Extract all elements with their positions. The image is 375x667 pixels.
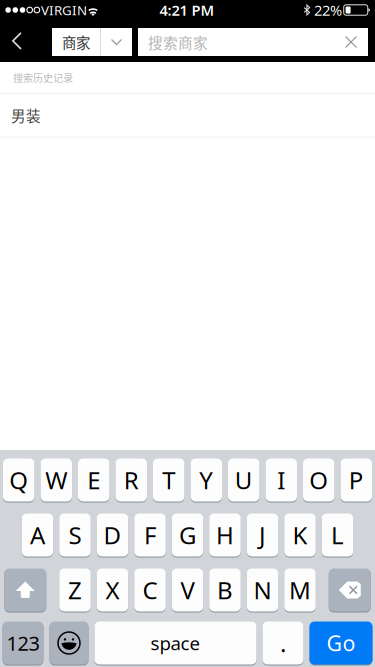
staticText: M bbox=[289, 574, 311, 606]
button[interactable]: 搜索商家 bbox=[138, 28, 368, 56]
button[interactable]: A bbox=[22, 513, 53, 557]
button[interactable]: T bbox=[153, 458, 184, 502]
button[interactable]: D bbox=[97, 513, 128, 557]
button[interactable]: B bbox=[209, 568, 241, 612]
button[interactable]: G bbox=[172, 513, 203, 557]
staticText: D bbox=[103, 519, 121, 551]
button[interactable]: U bbox=[228, 458, 259, 502]
staticText: C bbox=[142, 574, 157, 606]
staticText: VIRGIN bbox=[41, 1, 87, 19]
button[interactable]: space bbox=[94, 621, 256, 665]
button[interactable]: F bbox=[134, 513, 166, 557]
staticText: L bbox=[331, 519, 344, 551]
staticText: 22% bbox=[314, 0, 342, 20]
staticText: N bbox=[253, 574, 271, 606]
button[interactable]: L bbox=[322, 513, 353, 557]
button[interactable]: X bbox=[97, 568, 128, 612]
staticText: 男装 bbox=[11, 105, 41, 126]
staticText: 商家 bbox=[62, 32, 90, 52]
staticText: I bbox=[277, 464, 285, 496]
staticText: 搜索商家 bbox=[148, 31, 208, 53]
staticText: G bbox=[179, 519, 196, 551]
button[interactable]: 商家 bbox=[52, 28, 132, 56]
staticText: K bbox=[292, 519, 307, 551]
staticText: O bbox=[309, 464, 328, 496]
staticText: P bbox=[349, 464, 364, 496]
button[interactable]: W bbox=[40, 458, 72, 502]
staticText: Go bbox=[326, 629, 355, 657]
button[interactable]: N bbox=[247, 568, 278, 612]
button[interactable]: O bbox=[303, 458, 334, 502]
button[interactable]: Y bbox=[190, 458, 222, 502]
staticText: 123 bbox=[6, 630, 39, 656]
staticText: 4:21 PM bbox=[159, 0, 214, 20]
button[interactable]: I bbox=[265, 458, 297, 502]
button[interactable]: C bbox=[134, 568, 166, 612]
staticText: S bbox=[68, 519, 81, 551]
button[interactable]: P bbox=[340, 458, 372, 502]
staticText: U bbox=[235, 464, 253, 496]
button[interactable]: Back bbox=[0, 20, 34, 62]
button[interactable]: Shift bbox=[4, 568, 46, 612]
button[interactable]: R bbox=[115, 458, 147, 502]
staticText: T bbox=[162, 464, 175, 496]
staticText: 搜索历史记录 bbox=[13, 70, 73, 85]
staticText: Z bbox=[68, 574, 82, 606]
button[interactable]: J bbox=[247, 513, 278, 557]
staticText: . bbox=[280, 627, 286, 659]
staticText: W bbox=[45, 464, 67, 496]
button[interactable]: Delete bbox=[329, 568, 371, 612]
staticText: X bbox=[105, 574, 119, 606]
button[interactable]: . bbox=[262, 621, 303, 665]
staticText: B bbox=[217, 574, 233, 606]
button[interactable]: H bbox=[209, 513, 241, 557]
staticText: Q bbox=[9, 464, 28, 496]
staticText: E bbox=[87, 464, 100, 496]
button[interactable]: S bbox=[59, 513, 91, 557]
button[interactable]: V bbox=[172, 568, 203, 612]
button[interactable]: 123 bbox=[2, 621, 43, 665]
button[interactable]: Go bbox=[309, 621, 372, 665]
staticText: R bbox=[124, 464, 139, 496]
button[interactable]: Z bbox=[59, 568, 91, 612]
staticText: F bbox=[144, 519, 156, 551]
staticText: H bbox=[216, 519, 234, 551]
button[interactable]: M bbox=[284, 568, 316, 612]
button[interactable]: Q bbox=[3, 458, 34, 502]
staticText: V bbox=[180, 574, 194, 606]
staticText: space bbox=[150, 631, 200, 655]
staticText: Y bbox=[199, 464, 213, 496]
button[interactable]: K bbox=[284, 513, 316, 557]
staticText: A bbox=[30, 519, 45, 551]
button[interactable]: Emoji bbox=[49, 621, 88, 665]
button[interactable]: E bbox=[78, 458, 109, 502]
staticText: J bbox=[259, 519, 266, 551]
button[interactable]: 男装 bbox=[0, 94, 375, 137]
